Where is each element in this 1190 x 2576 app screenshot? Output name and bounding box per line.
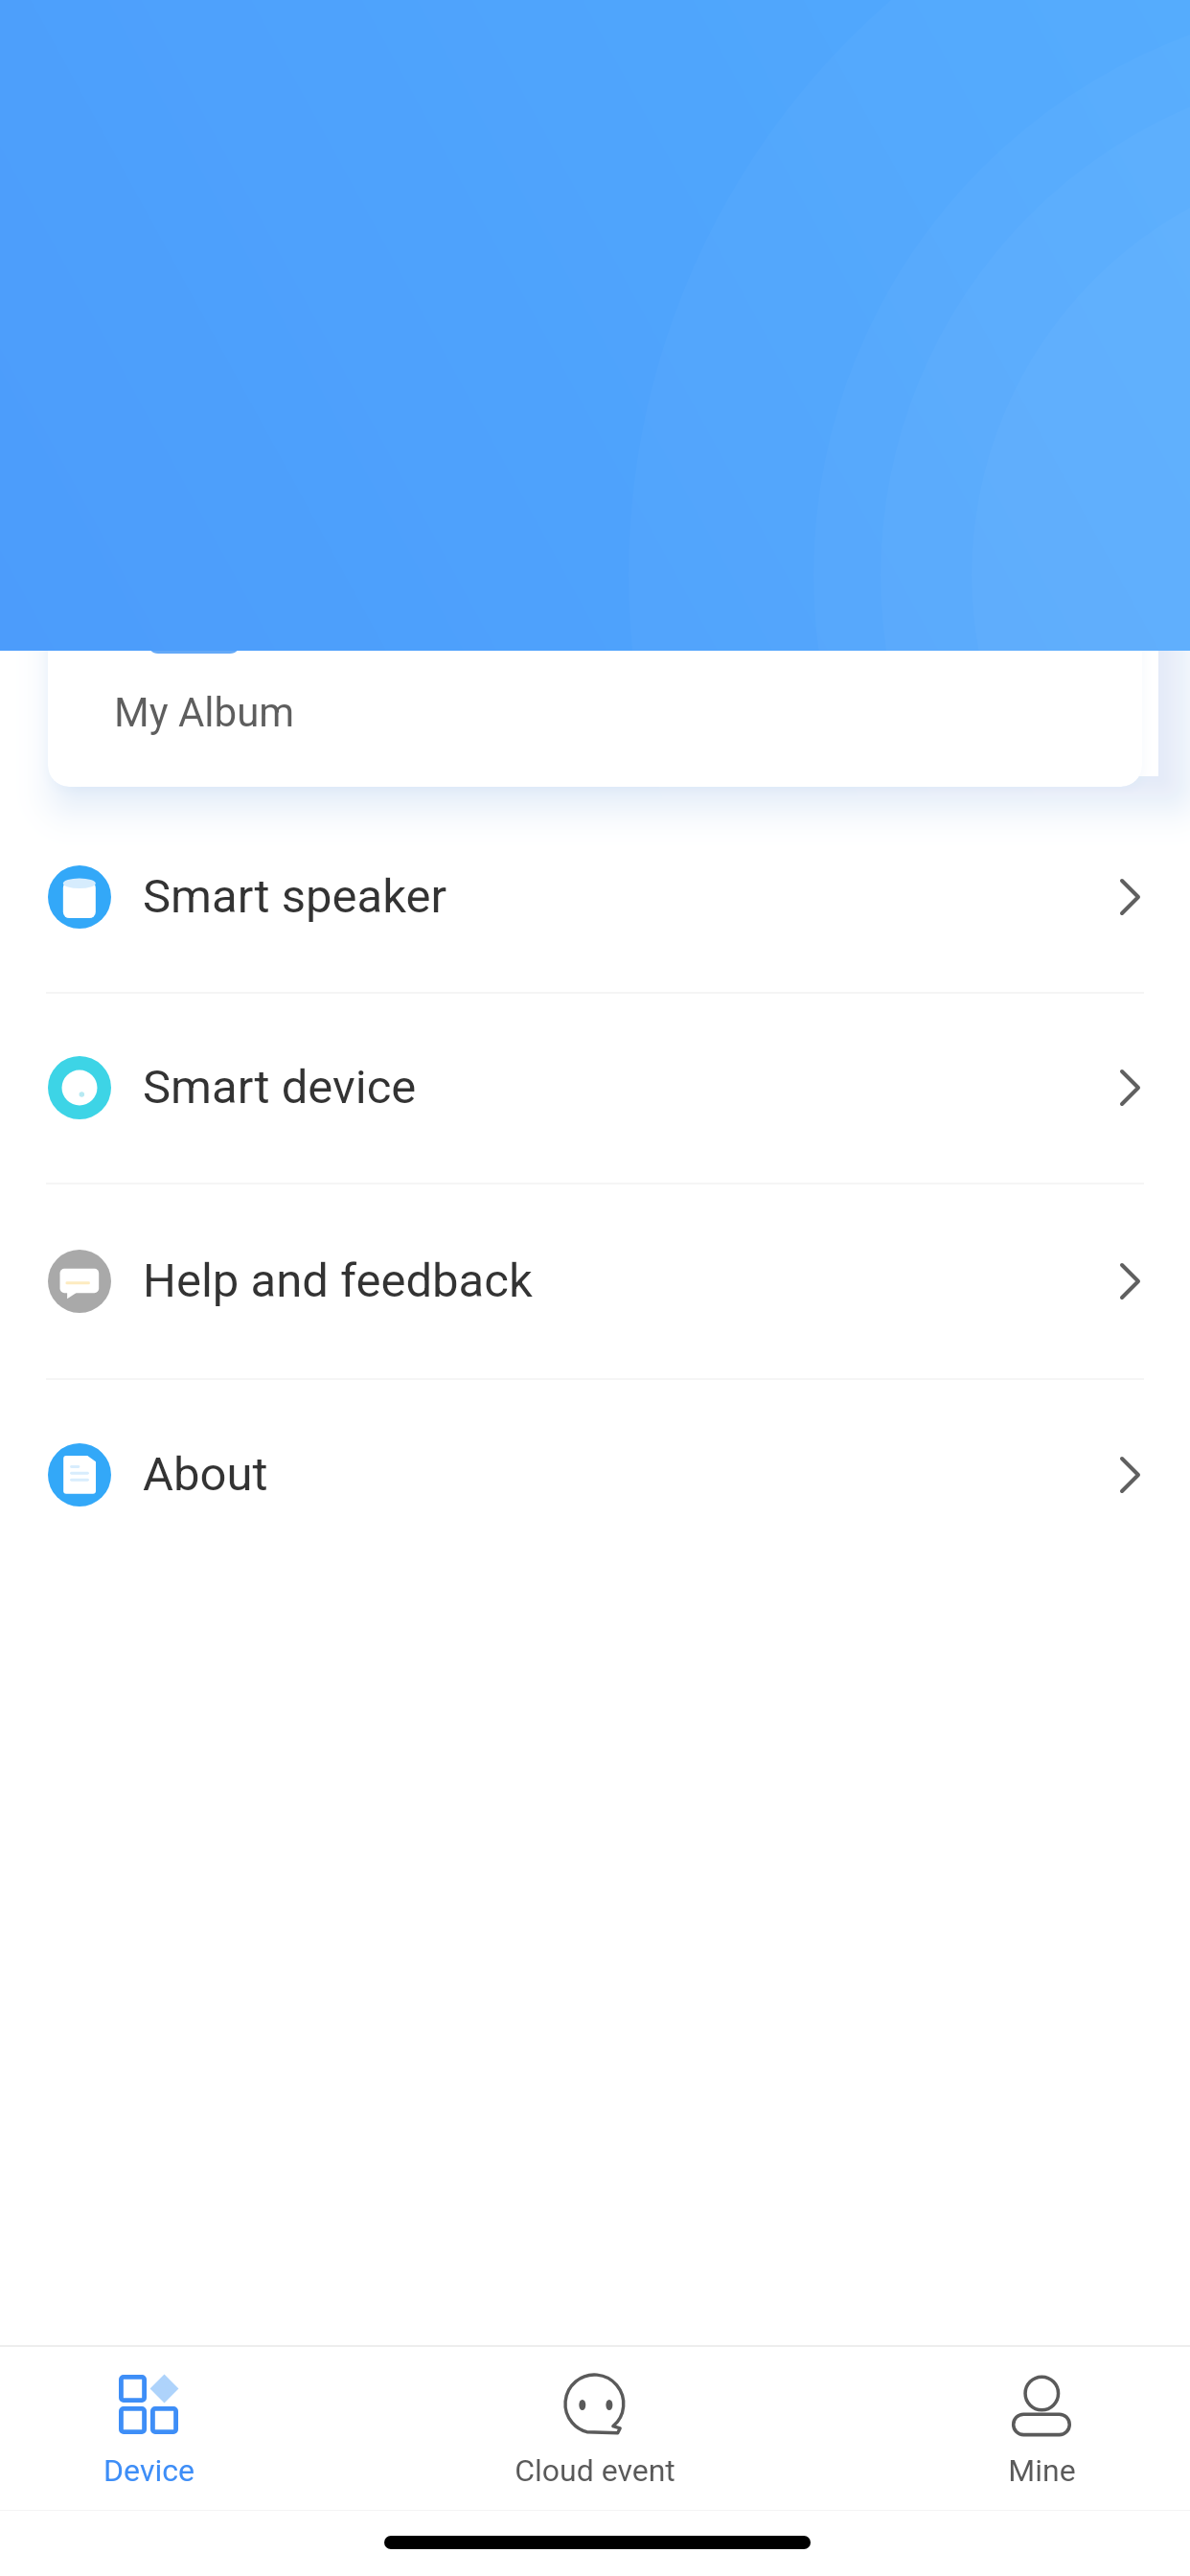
staticText: About [143,1447,268,1502]
button[interactable]: Smart speaker [0,800,1190,993]
staticText: Smart speaker [143,869,447,924]
button[interactable]: Smart device [0,991,1190,1184]
button[interactable]: Cloud event [492,2347,698,2510]
staticText: Mine [1008,2452,1076,2489]
button[interactable]: About [0,1378,1190,1571]
button[interactable]: My Album [48,521,287,787]
staticText: Help and feedback [143,1253,533,1308]
button[interactable]: Device [45,2347,252,2510]
button[interactable]: Help and feedback [0,1184,1190,1377]
staticText: Device [103,2452,195,2489]
button[interactable]: Mine [938,2347,1145,2510]
staticText: Smart device [143,1060,417,1115]
staticText: My Album [114,689,295,736]
staticText: Cloud event [515,2452,675,2489]
